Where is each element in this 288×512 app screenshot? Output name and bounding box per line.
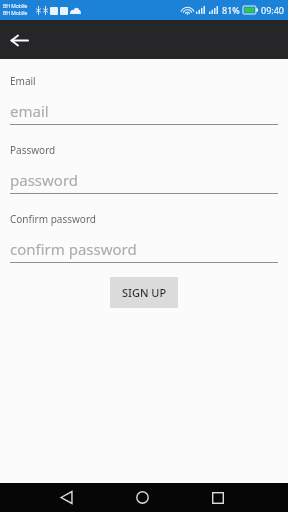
- staticText: SIGN UP: [122, 285, 167, 300]
- staticText: email: [10, 101, 49, 121]
- staticText: Password: [10, 143, 56, 157]
- button[interactable]: email: [10, 101, 278, 125]
- button[interactable]: Home: [124, 483, 160, 512]
- staticText: password: [10, 170, 78, 190]
- button[interactable]: Back: [48, 483, 84, 512]
- staticText: confirm password: [10, 239, 137, 259]
- staticText: 81%: [222, 4, 240, 16]
- staticText: BH Mobile: [3, 10, 28, 17]
- button[interactable]: Back: [0, 21, 38, 59]
- staticText: Email: [10, 74, 36, 88]
- staticText: BH Mobile: [3, 3, 28, 10]
- staticText: 09:40: [261, 4, 285, 16]
- button[interactable]: SIGN UP: [110, 277, 178, 308]
- button[interactable]: password: [10, 170, 278, 194]
- staticText: Confirm password: [10, 212, 96, 226]
- button[interactable]: Recents: [200, 483, 236, 512]
- button[interactable]: confirm password: [10, 239, 278, 263]
